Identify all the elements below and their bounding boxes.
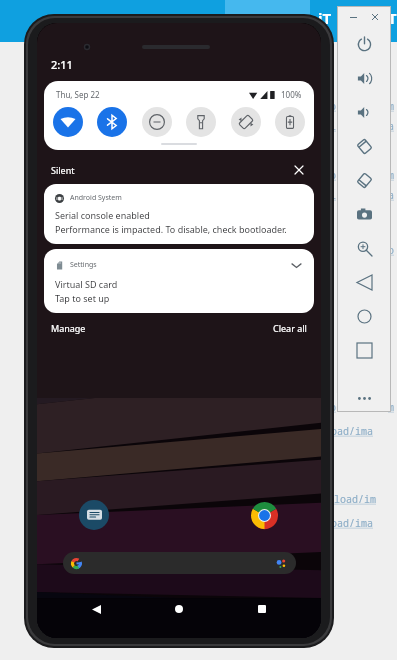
staticText: Virtual SD card [55, 278, 118, 290]
staticText: o [388, 243, 394, 257]
button[interactable]: Do Not Disturb [142, 107, 172, 137]
button[interactable]: Wi-Fi [53, 107, 83, 137]
staticText: m [388, 400, 394, 414]
staticText: Performance is impacted. To disable, che… [55, 223, 287, 235]
staticText: Silent [51, 164, 75, 176]
button[interactable]: Flashlight [186, 107, 216, 137]
staticText: l [330, 188, 336, 202]
button[interactable]: Close [367, 9, 383, 25]
staticText: 100% [281, 89, 302, 100]
staticText: T [388, 8, 397, 28]
button[interactable] [63, 552, 296, 574]
staticText: Manage [51, 322, 86, 334]
staticText: pload/im [328, 492, 376, 506]
staticText: load/ima [325, 516, 373, 530]
button[interactable]: Take screenshot [338, 197, 390, 231]
staticText: iT [318, 8, 332, 28]
button[interactable]: Manage [51, 322, 86, 334]
button[interactable]: Volume up [338, 61, 390, 95]
staticText: p [330, 400, 336, 414]
button[interactable]: Home [338, 299, 390, 333]
button[interactable]: More [338, 385, 390, 411]
staticText: Clear all [273, 322, 307, 334]
staticText: Thu, Sep 22 [56, 89, 100, 100]
button[interactable]: Power [338, 27, 390, 61]
staticText: p [330, 168, 336, 182]
button[interactable]: Close [291, 162, 307, 178]
staticText: Settings [70, 260, 97, 270]
staticText: 2:11 [51, 57, 73, 72]
staticText: m [388, 168, 394, 182]
staticText: m [388, 99, 394, 113]
staticText: a [388, 188, 394, 202]
button[interactable]: Minimize [345, 9, 361, 25]
button[interactable]: Recents [249, 596, 275, 622]
staticText: Android System [70, 193, 122, 203]
staticText: l [330, 119, 336, 133]
button[interactable]: Clear all [273, 322, 307, 334]
staticText: p [330, 99, 336, 113]
staticText: a [388, 119, 394, 133]
button[interactable]: Android System [44, 184, 314, 244]
button[interactable]: Rotate right [338, 163, 390, 197]
button[interactable]: Bluetooth [97, 107, 127, 137]
button[interactable]: Expand [289, 258, 303, 272]
button[interactable]: Messages [79, 500, 109, 530]
staticText: load/ima [325, 424, 373, 438]
button[interactable]: Chrome [249, 500, 279, 530]
staticText: Serial console enabled [55, 209, 150, 221]
button[interactable]: Back [338, 265, 390, 299]
button[interactable]: Back [83, 596, 109, 622]
button[interactable]: Silent [51, 162, 307, 178]
button[interactable]: Rotate left [338, 129, 390, 163]
button[interactable]: Battery Saver [275, 107, 305, 137]
button[interactable]: Recents [338, 333, 390, 367]
button[interactable]: Volume down [338, 95, 390, 129]
button[interactable]: Settings [44, 249, 314, 313]
button[interactable]: Auto-rotate [231, 107, 261, 137]
button[interactable]: Home [166, 596, 192, 622]
staticText: Tap to set up [55, 292, 110, 304]
button[interactable]: Zoom [338, 231, 390, 265]
